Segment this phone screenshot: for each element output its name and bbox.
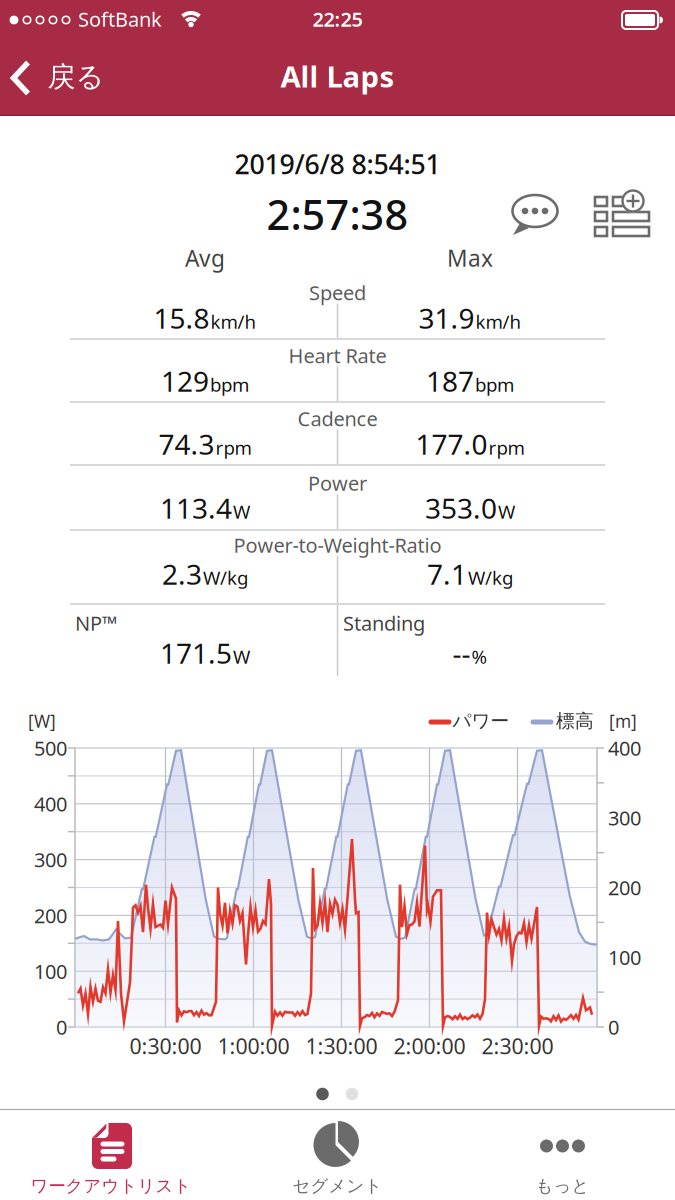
staticText: 標高 <box>556 709 594 732</box>
button[interactable]: ワークアウトリスト <box>0 1109 224 1200</box>
staticText: Speed <box>309 279 366 306</box>
staticText: 1:00:00 <box>217 1032 289 1060</box>
staticText: bpm <box>475 372 514 397</box>
staticText: 31.9 <box>418 299 474 337</box>
staticText: Power-to-Weight-Ratio <box>233 532 441 558</box>
button[interactable]: セグメント <box>225 1109 449 1200</box>
staticText: rpm <box>215 435 251 460</box>
staticText: 171.5 <box>160 634 232 672</box>
button[interactable]: Comment <box>507 188 563 240</box>
staticText: [m] <box>609 709 637 732</box>
staticText: パワー <box>452 709 509 732</box>
staticText: 100 <box>34 958 67 984</box>
staticText: W <box>498 499 515 524</box>
staticText: Max <box>447 243 493 273</box>
staticText: bpm <box>210 372 249 397</box>
staticText: All Laps <box>280 56 394 95</box>
staticText: Heart Rate <box>288 342 386 369</box>
staticText: km/h <box>475 309 521 334</box>
staticText: 129 <box>161 362 209 400</box>
staticText: 74.3 <box>158 425 214 463</box>
staticText: 200 <box>34 902 67 929</box>
staticText: 2019/6/8 8:54:51 <box>234 146 440 182</box>
staticText: Cadence <box>297 405 377 432</box>
staticText: 177.0 <box>415 425 487 463</box>
staticText: Power <box>308 470 367 496</box>
button[interactable]: Back <box>0 41 120 115</box>
staticText: 2:57:38 <box>266 187 408 241</box>
staticText: 戻る <box>47 60 104 94</box>
staticText: 0 <box>56 1014 67 1040</box>
staticText: 1:30:00 <box>305 1032 377 1060</box>
staticText: もっと <box>535 1175 589 1197</box>
staticText: 113.4 <box>160 489 232 527</box>
staticText: 2.3 <box>162 555 202 593</box>
staticText: -- <box>452 634 470 672</box>
staticText: [W] <box>28 709 56 732</box>
staticText: Standing <box>343 610 425 636</box>
staticText: 300 <box>608 804 641 831</box>
staticText: 187 <box>426 362 474 400</box>
staticText: 300 <box>34 846 67 873</box>
staticText: ワークアウトリスト <box>30 1175 191 1197</box>
staticText: 2:30:00 <box>481 1032 553 1060</box>
staticText: W <box>233 644 250 669</box>
staticText: 15.8 <box>153 299 209 337</box>
staticText: W/kg <box>468 565 513 590</box>
staticText: SoftBank <box>78 6 162 32</box>
staticText: W/kg <box>203 565 248 590</box>
staticText: 0 <box>608 1014 619 1040</box>
staticText: 100 <box>608 944 641 971</box>
staticText: NP™ <box>75 610 117 636</box>
staticText: km/h <box>210 309 256 334</box>
staticText: セグメント <box>292 1175 382 1197</box>
staticText: rpm <box>488 435 524 460</box>
staticText: 7.1 <box>427 555 467 593</box>
staticText: % <box>471 644 487 669</box>
staticText: 500 <box>34 735 67 761</box>
staticText: 2:00:00 <box>393 1032 465 1060</box>
staticText: 0:30:00 <box>129 1032 201 1060</box>
staticText: 353.0 <box>425 489 497 527</box>
button[interactable]: もっと <box>450 1109 674 1200</box>
button[interactable]: Add lap <box>592 185 652 241</box>
staticText: 200 <box>608 874 641 901</box>
staticText: 400 <box>608 735 641 761</box>
staticText: W <box>233 499 250 524</box>
staticText: 400 <box>34 790 67 817</box>
staticText: Avg <box>185 243 225 273</box>
staticText: 22:25 <box>312 6 362 32</box>
